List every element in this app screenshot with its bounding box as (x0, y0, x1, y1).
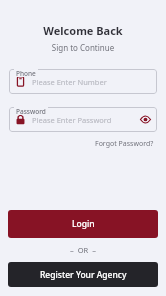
other: Phone (15, 76, 26, 87)
other: Password (15, 114, 26, 125)
button[interactable]: Register Your Agency (8, 262, 158, 287)
button[interactable]: Password (9, 107, 157, 132)
other: Show password (140, 114, 151, 125)
staticText: Login (72, 218, 95, 230)
button[interactable]: Phone (9, 69, 157, 94)
staticText: Password (16, 107, 46, 115)
staticText: Welcome Back (0, 23, 166, 38)
staticText: Sign to Continue (0, 42, 166, 53)
button[interactable]: Show password (140, 114, 151, 125)
staticText: Phone (16, 69, 36, 77)
button[interactable]: Login (8, 210, 158, 238)
button[interactable]: Forgot Password? (93, 137, 156, 151)
staticText: Please Enter Password (32, 115, 140, 125)
staticText: Forgot Password? (95, 139, 154, 149)
staticText: Register Your Agency (40, 269, 127, 281)
staticText: Please Enter Number (32, 77, 151, 87)
staticText: – OR – (0, 245, 166, 255)
